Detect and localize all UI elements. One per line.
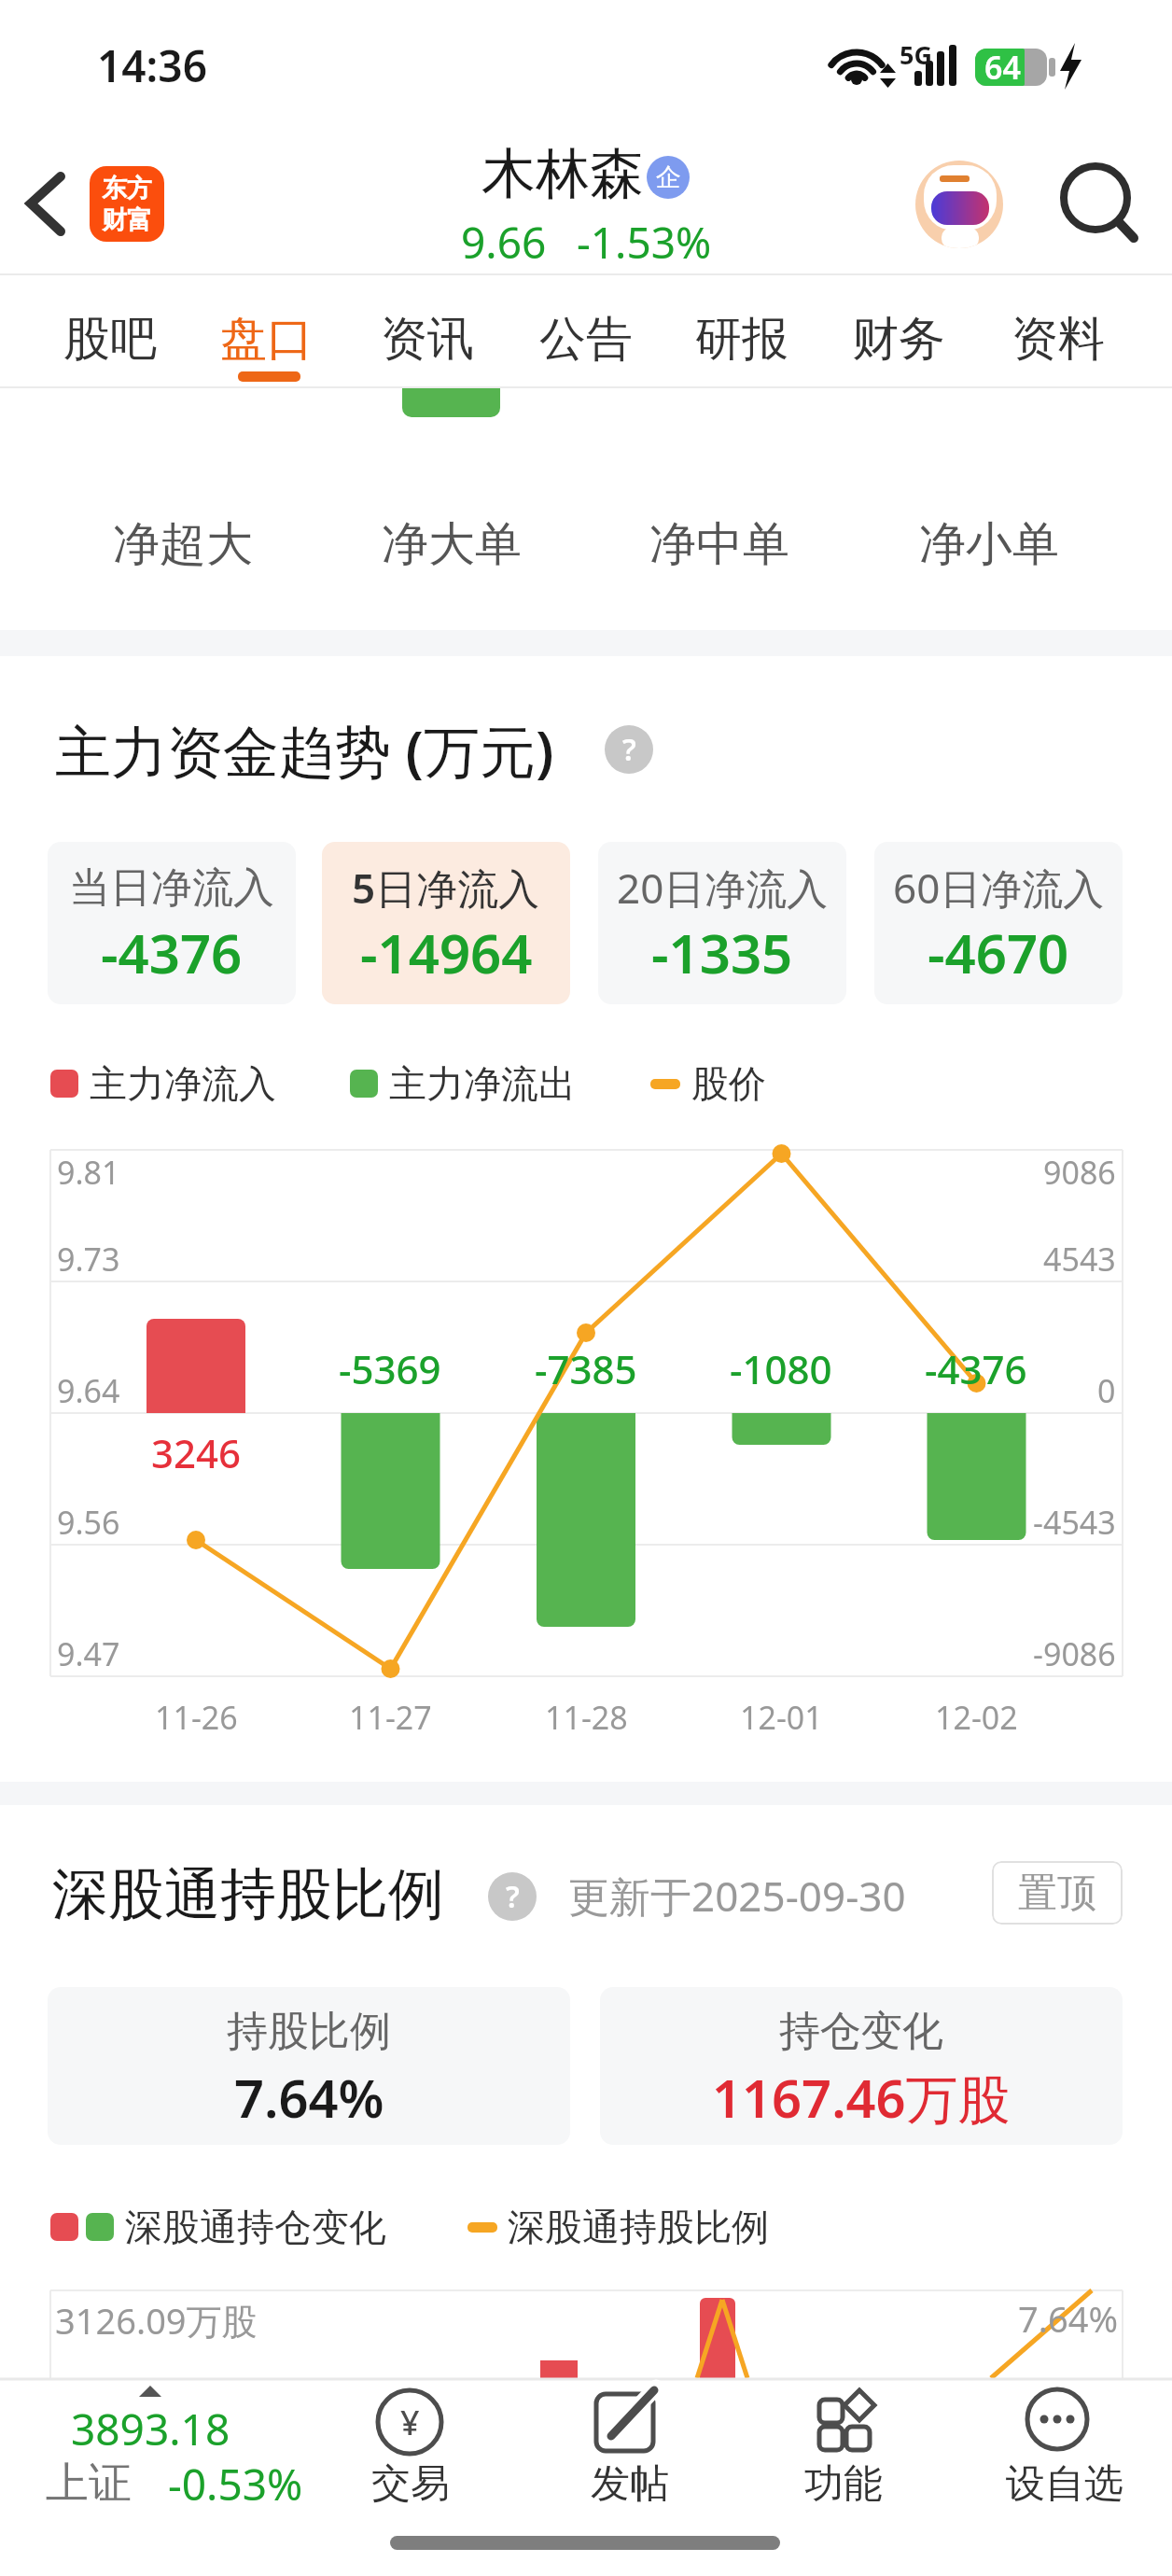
staticText: -7385 xyxy=(535,1342,637,1395)
button[interactable] xyxy=(28,280,168,385)
staticText: 9.81 xyxy=(57,1151,120,1194)
staticText: 持股比例 xyxy=(227,2006,391,2057)
staticText: 更新于2025-09-30 xyxy=(568,1868,906,1924)
staticText: 研报 xyxy=(695,310,788,369)
staticText: 交易 xyxy=(371,2459,450,2509)
button[interactable] xyxy=(995,280,1125,385)
staticText: 主力资金趋势 (万元) xyxy=(55,712,554,787)
button[interactable] xyxy=(874,842,1123,1004)
staticText: 9.66 xyxy=(461,213,547,272)
staticText: 9086 xyxy=(1043,1151,1116,1194)
button[interactable]: 置顶 xyxy=(992,1861,1123,1925)
staticText: 11-26 xyxy=(155,1696,238,1739)
button[interactable] xyxy=(364,280,495,385)
staticText: ? xyxy=(506,1876,520,1917)
button[interactable] xyxy=(48,842,296,1004)
button[interactable] xyxy=(971,2386,1158,2516)
staticText: 3246 xyxy=(151,1426,242,1479)
staticText: ¥ xyxy=(400,2400,420,2445)
staticText: 木林森 xyxy=(481,140,644,208)
staticText: 资讯 xyxy=(381,310,474,369)
button[interactable] xyxy=(1054,157,1144,246)
staticText: 上证 xyxy=(46,2457,132,2511)
button[interactable] xyxy=(19,2386,299,2516)
staticText: -1080 xyxy=(730,1342,832,1395)
staticText: 公告 xyxy=(539,310,633,369)
staticText: 发帖 xyxy=(591,2459,669,2509)
button[interactable] xyxy=(760,2386,928,2516)
staticText: -4543 xyxy=(1033,1501,1116,1544)
staticText: 20日净流入 xyxy=(617,860,829,916)
button[interactable] xyxy=(327,2386,495,2516)
staticText: 财富 xyxy=(102,204,152,236)
staticText: 9.64 xyxy=(57,1369,120,1412)
staticText: 东方 xyxy=(102,173,152,204)
staticText: 64 xyxy=(984,46,1021,87)
staticText: 主力净流入 xyxy=(90,1060,276,1107)
button[interactable] xyxy=(19,166,80,243)
staticText: 主力净流出 xyxy=(389,1060,576,1107)
staticText: -4376 xyxy=(101,916,243,989)
staticText: 功能 xyxy=(804,2459,883,2509)
staticText: 股价 xyxy=(691,1060,766,1107)
staticText: 深股通持股比例 xyxy=(508,2204,769,2250)
button[interactable] xyxy=(546,2386,714,2516)
staticText: -0.53% xyxy=(168,2455,303,2513)
staticText: 置顶 xyxy=(1018,1869,1096,1918)
staticText: 5G xyxy=(900,37,932,72)
staticText: 净大单 xyxy=(382,515,522,574)
staticText: 深股通持股比例 xyxy=(52,1859,444,1930)
staticText: 12-01 xyxy=(740,1696,823,1739)
staticText: 7.64% xyxy=(234,2062,384,2133)
staticText: 5日净流入 xyxy=(352,860,540,916)
staticText: 资料 xyxy=(1012,310,1105,369)
staticText: -1335 xyxy=(651,916,793,989)
staticText: 财务 xyxy=(852,310,945,369)
staticText: 盘口 xyxy=(220,310,314,369)
staticText: -4670 xyxy=(928,916,1069,989)
staticText: -9086 xyxy=(1033,1632,1116,1675)
staticText: 60日净流入 xyxy=(893,860,1105,916)
staticText: 净小单 xyxy=(919,515,1059,574)
staticText: 1167.46万股 xyxy=(712,2062,1011,2133)
button[interactable]: 东方 xyxy=(90,166,164,242)
staticText: 9.73 xyxy=(57,1238,120,1281)
button[interactable] xyxy=(836,280,967,385)
button[interactable] xyxy=(598,842,846,1004)
staticText: 企 xyxy=(656,161,681,193)
staticText: 深股通持仓变化 xyxy=(125,2204,386,2250)
staticText: 0 xyxy=(1097,1369,1116,1412)
staticText: 7.64% xyxy=(1018,2294,1118,2343)
button[interactable] xyxy=(322,842,570,1004)
staticText: 9.47 xyxy=(57,1632,120,1675)
staticText: 9.56 xyxy=(57,1501,120,1544)
staticText: 股吧 xyxy=(63,310,157,369)
staticText: -5369 xyxy=(339,1342,441,1395)
button[interactable] xyxy=(203,280,330,385)
staticText: 4543 xyxy=(1043,1238,1116,1281)
staticText: 净中单 xyxy=(649,515,789,574)
button[interactable] xyxy=(523,280,653,385)
button[interactable] xyxy=(679,280,810,385)
staticText: 当日净流入 xyxy=(69,862,274,914)
staticText: 14:36 xyxy=(97,36,207,95)
button[interactable] xyxy=(915,161,1003,248)
staticText: 11-27 xyxy=(349,1696,432,1739)
staticText: 设自选 xyxy=(1006,2459,1123,2509)
staticText: 3893.18 xyxy=(71,2400,230,2458)
staticText: 12-02 xyxy=(935,1696,1018,1739)
staticText: -1.53% xyxy=(577,213,712,272)
staticText: 3126.09万股 xyxy=(55,2296,258,2345)
staticText: -4376 xyxy=(925,1342,1027,1395)
staticText: 持仓变化 xyxy=(779,2006,943,2057)
staticText: 净超大 xyxy=(113,515,253,574)
staticText: -14964 xyxy=(360,916,533,989)
staticText: ? xyxy=(622,729,636,770)
staticText: 11-28 xyxy=(545,1696,628,1739)
